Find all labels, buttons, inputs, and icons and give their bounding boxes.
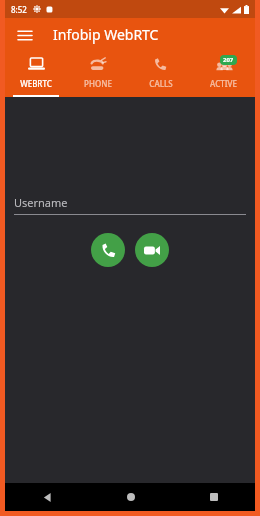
button[interactable]: Start audio call <box>91 233 125 267</box>
button[interactable]: WEBRTC <box>5 51 67 97</box>
staticText: 207 <box>223 56 234 64</box>
staticText: Username <box>14 195 68 210</box>
button[interactable]: Username <box>14 195 246 215</box>
staticText: CALLS <box>149 78 173 89</box>
staticText: ACTIVE <box>210 78 237 89</box>
button[interactable]: CALLS <box>129 51 192 97</box>
staticText: Infobip WebRTC <box>53 25 159 44</box>
button[interactable]: PHONE <box>67 51 129 97</box>
button[interactable]: Open navigation menu <box>13 23 37 47</box>
button[interactable]: Recent apps <box>172 483 255 511</box>
button[interactable]: Start video call <box>135 233 169 267</box>
button[interactable]: 207 <box>192 51 255 97</box>
button[interactable]: Home <box>89 483 172 511</box>
button[interactable]: Back <box>5 483 89 511</box>
staticText: PHONE <box>84 78 112 89</box>
staticText: 8:52 <box>11 4 27 15</box>
staticText: WEBRTC <box>20 78 52 89</box>
